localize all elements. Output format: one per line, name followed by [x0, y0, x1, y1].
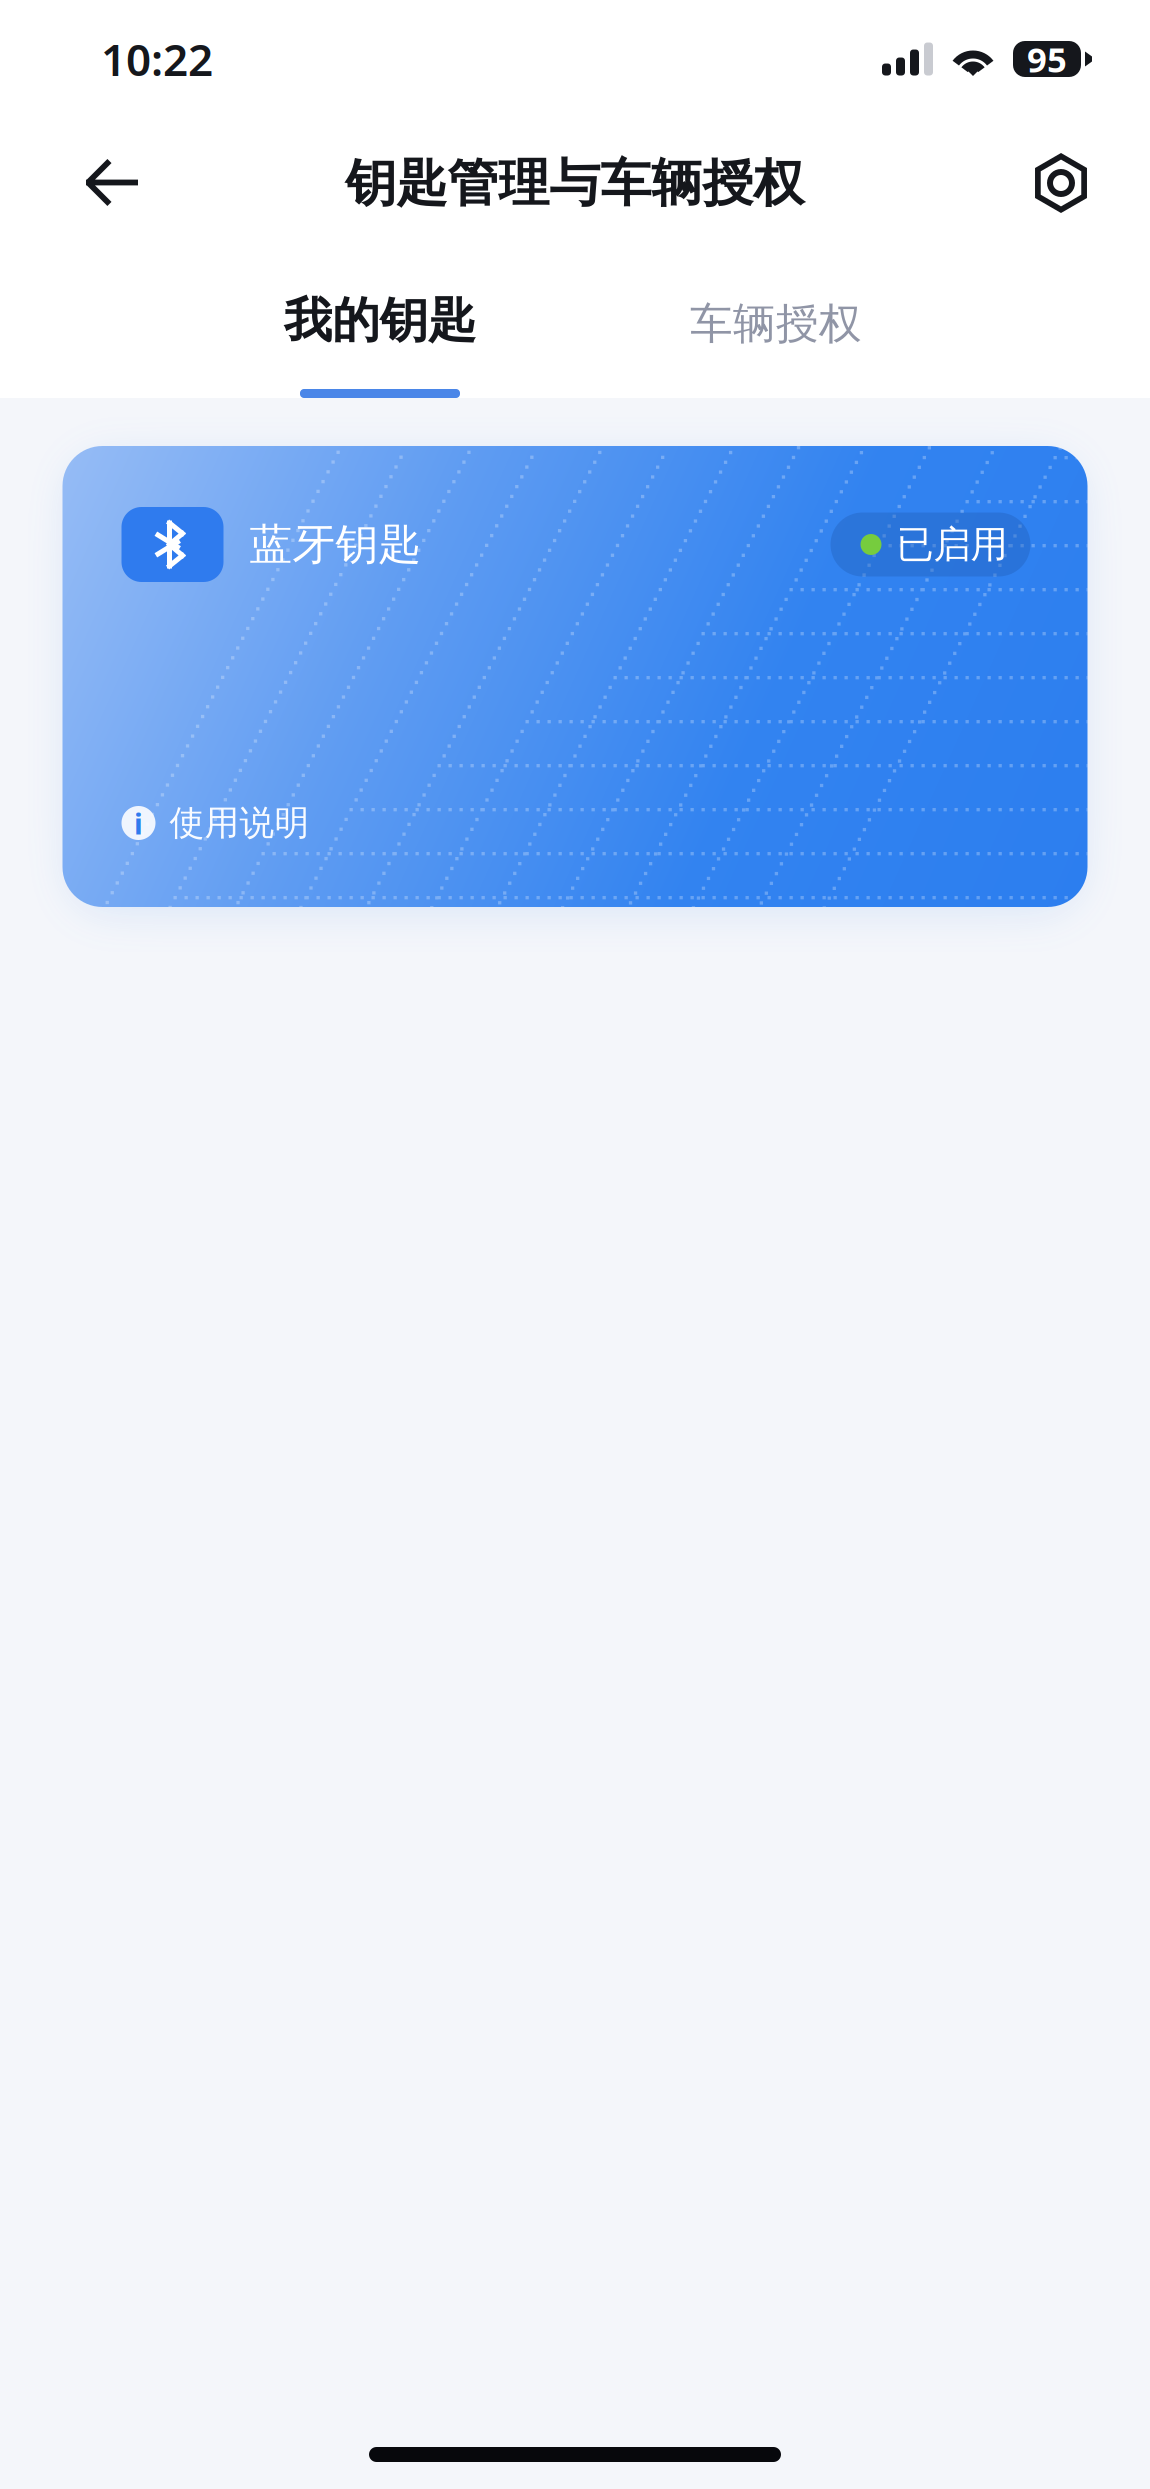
button[interactable]: 我的钥匙: [282, 242, 478, 398]
button[interactable]: 车辆授权: [690, 242, 862, 398]
staticText: 钥匙管理与车辆授权: [345, 152, 804, 215]
staticText: 已启用: [896, 522, 1007, 567]
staticText: 95: [1027, 36, 1067, 82]
button[interactable]: 返回: [56, 127, 168, 239]
staticText: 使用说明: [169, 802, 309, 844]
staticText: 蓝牙钥匙: [249, 518, 421, 571]
button[interactable]: 设置: [1005, 127, 1117, 239]
button[interactable]: 蓝牙钥匙: [62, 446, 1087, 907]
staticText: i: [134, 803, 143, 842]
staticText: 我的钥匙: [284, 291, 476, 350]
staticText: 10:22: [101, 30, 213, 88]
staticText: 车辆授权: [690, 298, 862, 350]
